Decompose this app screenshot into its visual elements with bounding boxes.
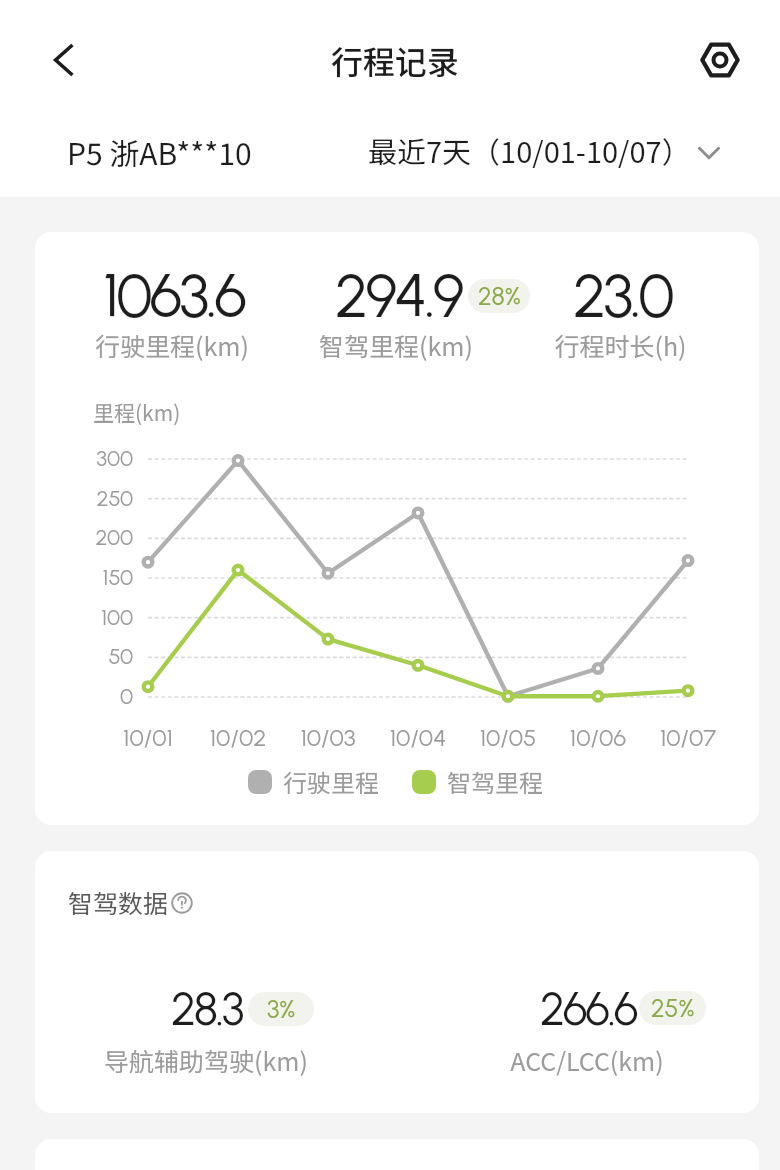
staticText: 266.6	[540, 981, 637, 1036]
button[interactable]: 最近7天（10/01-10/07）	[364, 125, 728, 175]
staticText: 300	[63, 445, 133, 471]
other: Help	[171, 892, 193, 914]
staticText: 294.9	[335, 258, 462, 331]
staticText: 最近7天（10/01-10/07）	[368, 129, 691, 171]
button[interactable]: Settings	[688, 28, 752, 92]
staticText: 3%	[267, 994, 296, 1024]
staticText: 10/03	[278, 723, 378, 752]
staticText: 100	[63, 604, 133, 630]
button[interactable]: 智驾里程	[412, 764, 543, 799]
staticText: 行程记录	[331, 37, 460, 83]
staticText: 28%	[478, 281, 521, 311]
staticText: 25%	[651, 993, 695, 1023]
button[interactable]: Back	[30, 26, 98, 94]
staticText: 10/02	[188, 723, 288, 752]
staticText: 10/04	[368, 723, 468, 752]
staticText: 150	[63, 564, 133, 590]
staticText: 250	[63, 485, 133, 511]
staticText: 智驾数据	[68, 884, 169, 920]
staticText: 28.3	[171, 981, 243, 1036]
staticText: 10/07	[638, 723, 738, 752]
staticText: P5 浙AB***10	[67, 130, 252, 173]
staticText: 行程时长(h)	[554, 327, 687, 363]
staticText: 里程(km)	[93, 397, 181, 427]
staticText: 23.0	[573, 258, 672, 331]
staticText: ACC/LCC(km)	[510, 1042, 664, 1078]
button[interactable]: 智驾数据	[68, 884, 193, 920]
staticText: 10/06	[548, 723, 648, 752]
staticText: 50	[63, 643, 133, 669]
staticText: 0	[63, 683, 133, 709]
staticText: 行驶里程	[283, 764, 379, 799]
staticText: 导航辅助驾驶(km)	[104, 1042, 308, 1078]
button[interactable]: P5 浙AB***10	[59, 122, 260, 181]
staticText: 200	[63, 524, 133, 550]
staticText: 10/01	[98, 723, 198, 752]
button[interactable]: 行驶里程	[248, 764, 379, 799]
staticText: 智驾里程	[447, 764, 543, 799]
staticText: 10/05	[458, 723, 558, 752]
staticText: 行驶里程(km)	[95, 327, 249, 363]
staticText: 智驾里程(km)	[319, 327, 473, 363]
staticText: 1063.6	[103, 258, 245, 331]
